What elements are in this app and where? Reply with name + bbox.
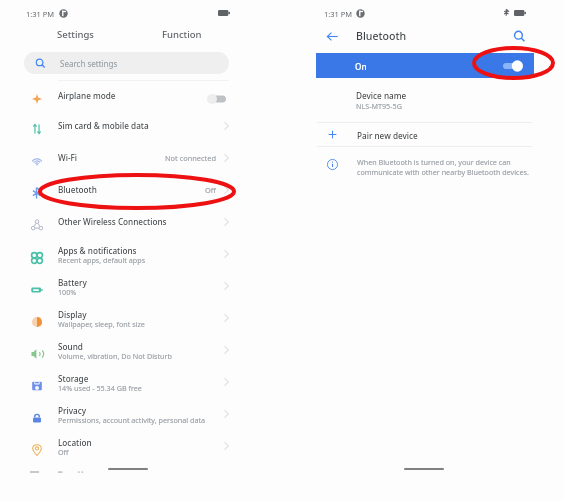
- button[interactable]: Storage: [0, 366, 252, 396]
- staticText: 14% used - 55.34 GB free: [58, 383, 142, 393]
- staticText: Search settings: [60, 58, 118, 69]
- button[interactable]: On: [316, 53, 534, 78]
- staticText: Wallpaper, sleep, font size: [58, 319, 145, 329]
- staticText: Settings: [57, 28, 94, 41]
- staticText: Storage: [58, 373, 89, 384]
- staticText: 100%: [58, 287, 77, 297]
- staticText: Battery: [58, 277, 87, 288]
- button[interactable]: Privacy: [0, 398, 252, 428]
- button[interactable]: Bluetooth: [0, 178, 252, 208]
- staticText: Airplane mode: [58, 90, 116, 101]
- button[interactable]: Airplane mode: [0, 84, 252, 114]
- staticText: When Bluetooth is turned on, your device…: [357, 157, 511, 167]
- staticText: Bluetooth: [356, 29, 407, 43]
- staticText: Other Wireless Connections: [58, 216, 167, 227]
- staticText: Pair new device: [357, 130, 418, 141]
- staticText: Bluetooth: [58, 184, 97, 195]
- staticText: Location: [58, 437, 92, 448]
- button[interactable]: Function: [144, 25, 220, 43]
- staticText: Display: [58, 309, 87, 320]
- button[interactable]: Wi-Fi: [0, 146, 252, 176]
- button[interactable]: Sim card & mobile data: [0, 114, 252, 144]
- button[interactable]: Sound: [0, 334, 252, 364]
- staticText: Volume, vibration, Do Not Disturb: [58, 351, 172, 361]
- button[interactable]: Device name: [340, 86, 540, 116]
- staticText: Off: [58, 447, 69, 457]
- staticText: Privacy: [58, 405, 87, 416]
- button[interactable]: Other Wireless Connections: [0, 210, 252, 240]
- staticText: communicate with other nearby Bluetooth …: [357, 167, 529, 177]
- button[interactable]: Battery: [0, 270, 252, 300]
- button[interactable]: Pair new device: [300, 123, 550, 146]
- staticText: Permissions, account activity, personal …: [58, 415, 206, 425]
- button[interactable]: Search: [507, 24, 531, 48]
- button[interactable]: Apps & notifications: [0, 238, 252, 268]
- staticText: Recent apps, default apps: [58, 255, 146, 265]
- staticText: 1:31 PM: [324, 9, 353, 19]
- staticText: Sound: [58, 341, 83, 352]
- staticText: Device name: [356, 90, 407, 101]
- button[interactable]: Search settings: [24, 52, 229, 74]
- button[interactable]: Settings: [37, 25, 113, 43]
- staticText: Not connected: [165, 153, 216, 163]
- button[interactable]: Location: [0, 430, 252, 460]
- staticText: Function: [162, 28, 202, 41]
- staticText: On: [355, 61, 367, 72]
- staticText: Wi-Fi: [58, 152, 78, 163]
- staticText: Off: [205, 185, 216, 195]
- button[interactable]: Display: [0, 302, 252, 332]
- staticText: NLS-MT95-5G: [356, 101, 402, 111]
- button[interactable]: Back: [320, 24, 344, 48]
- staticText: Sim card & mobile data: [58, 120, 149, 131]
- staticText: 1:31 PM: [26, 9, 55, 19]
- staticText: Apps & notifications: [58, 245, 137, 256]
